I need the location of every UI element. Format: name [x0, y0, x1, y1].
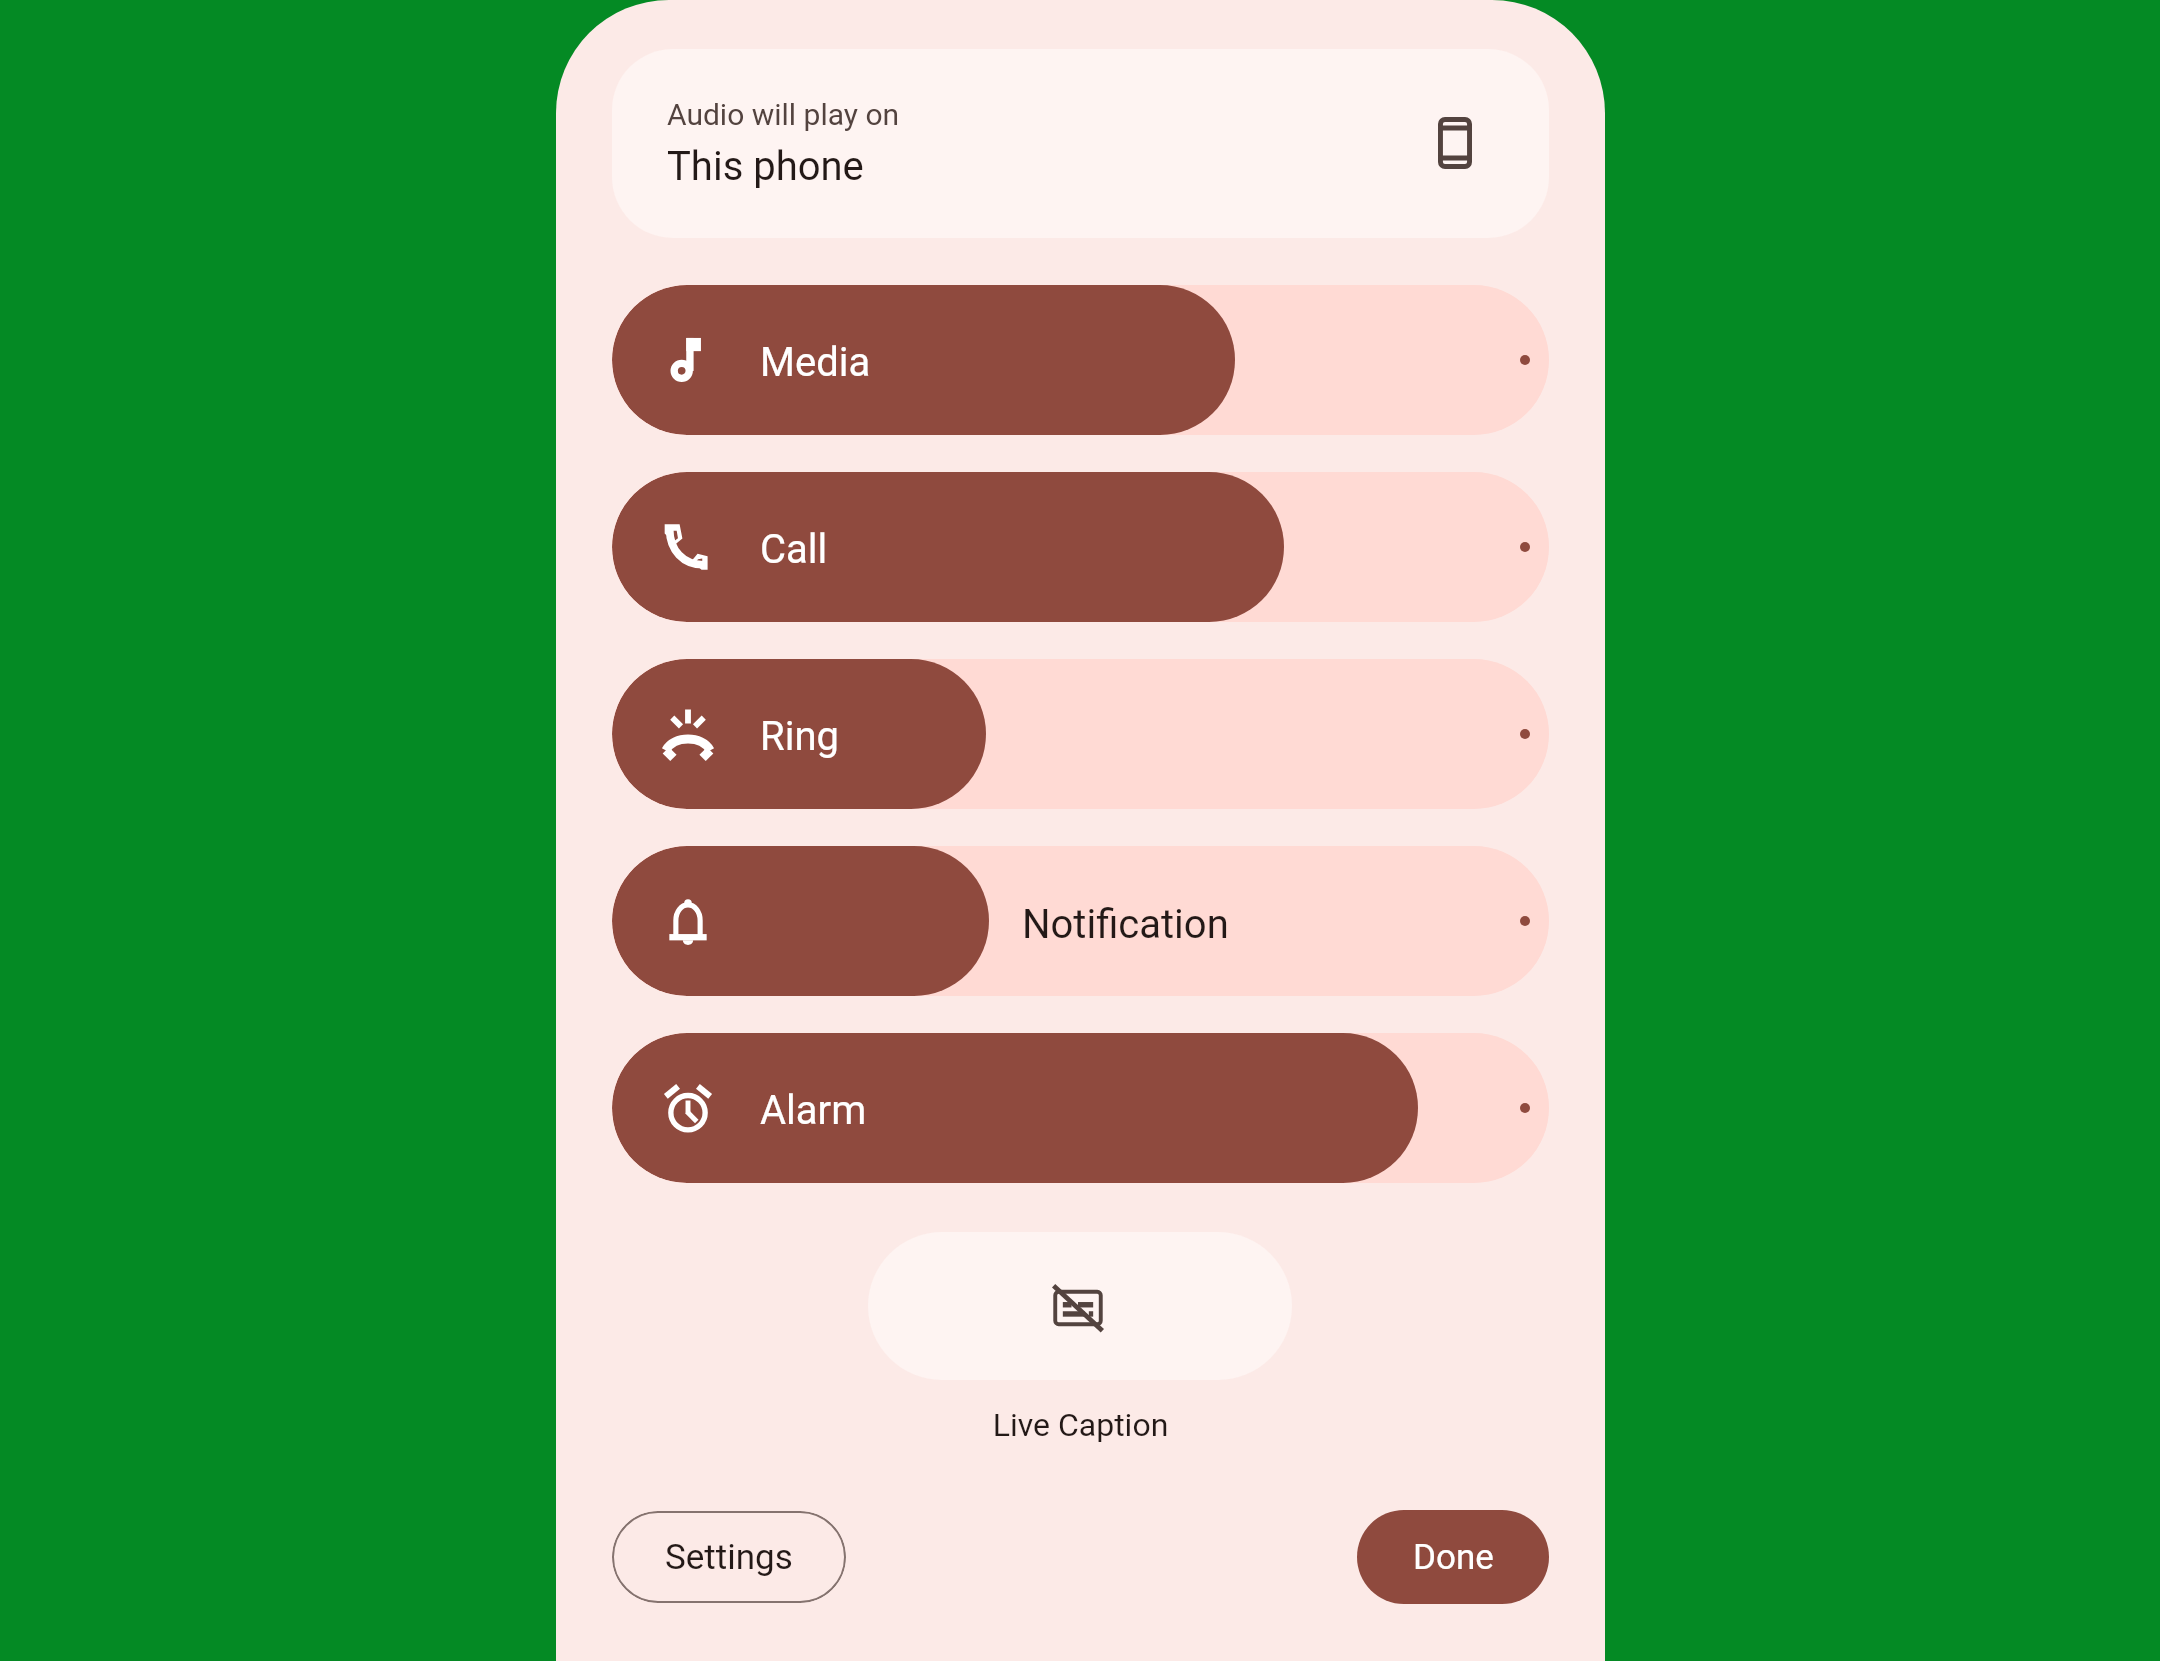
button[interactable]: Media volume	[612, 285, 1549, 435]
button[interactable]: Done	[1357, 1510, 1549, 1604]
button[interactable]: Settings	[612, 1511, 846, 1603]
staticText: Done	[1413, 1537, 1494, 1578]
staticText: Alarm	[760, 1087, 867, 1134]
staticText: This phone	[667, 143, 864, 190]
staticText: Ring	[760, 713, 839, 760]
staticText: Audio will play on	[667, 97, 900, 132]
staticText: Settings	[665, 1537, 793, 1578]
other: Output device: This phone	[1423, 111, 1487, 175]
staticText: Media	[760, 339, 871, 386]
button[interactable]: Alarm volume	[612, 1033, 1549, 1183]
button[interactable]: Ring volume	[612, 659, 1549, 809]
button[interactable]: Audio will play on	[612, 49, 1549, 238]
staticText: Notification	[1022, 901, 1229, 948]
button[interactable]: Notification volume	[612, 846, 1549, 996]
button[interactable]: Live Caption	[868, 1232, 1292, 1380]
staticText: Call	[760, 526, 828, 573]
button[interactable]: Call volume	[612, 472, 1549, 622]
staticText: Live Caption	[556, 1406, 1605, 1444]
